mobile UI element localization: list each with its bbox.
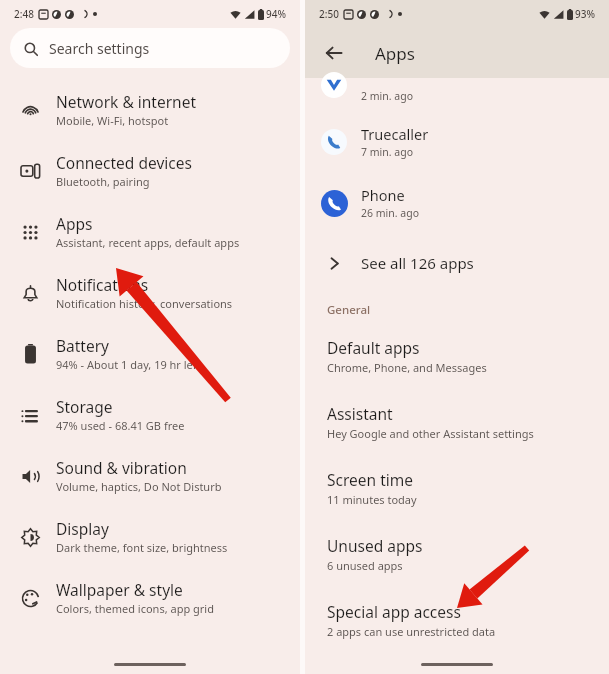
button[interactable]: See all 126 apps	[305, 242, 609, 284]
staticText: 2 min. ago	[361, 89, 413, 103]
button[interactable]: Storage	[0, 387, 300, 442]
staticText: 94% - About 1 day, 19 hr left	[56, 357, 201, 372]
staticText: Bluetooth, pairing	[56, 174, 150, 189]
staticText: Assistant	[327, 403, 393, 424]
button[interactable]: Wallpaper & style	[0, 570, 300, 625]
button[interactable]: Connected devices	[0, 143, 300, 198]
staticText: Battery	[56, 335, 110, 356]
button[interactable]: 2 min. ago	[305, 80, 609, 106]
staticText: Wallpaper & style	[56, 579, 183, 600]
staticText: 2:50	[319, 7, 339, 21]
button[interactable]: Truecaller	[305, 116, 609, 167]
staticText: Network & internet	[56, 91, 196, 112]
button[interactable]: Search settings	[10, 28, 290, 68]
staticText: Volume, haptics, Do Not Disturb	[56, 479, 222, 494]
staticText: 2 apps can use unrestricted data	[327, 624, 496, 639]
staticText: Screen time	[327, 469, 413, 490]
staticText: Phone	[361, 185, 405, 205]
button[interactable]: Phone	[305, 177, 609, 228]
staticText: Apps	[56, 213, 93, 234]
staticText: Sound & vibration	[56, 457, 187, 478]
staticText: 6 unused apps	[327, 558, 403, 573]
button[interactable]: Unused apps	[305, 524, 609, 584]
staticText: Default apps	[327, 337, 420, 358]
button[interactable]: Default apps	[305, 326, 609, 386]
staticText: 2:48	[14, 7, 34, 21]
button[interactable]: Special app access	[305, 590, 609, 650]
staticText: Storage	[56, 396, 113, 417]
staticText: Apps	[375, 42, 415, 65]
staticText: 11 minutes today	[327, 492, 417, 507]
button[interactable]: Assistant	[305, 392, 609, 452]
staticText: Mobile, Wi-Fi, hotspot	[56, 113, 169, 128]
staticText: Notifications	[56, 274, 149, 295]
button[interactable]: Sound & vibration	[0, 448, 300, 503]
staticText: 7 min. ago	[361, 145, 413, 159]
staticText: 47% used - 68.41 GB free	[56, 418, 185, 433]
button[interactable]: Apps	[0, 204, 300, 259]
staticText: Truecaller	[361, 124, 429, 144]
staticText: General	[327, 302, 371, 318]
staticText: Unused apps	[327, 535, 423, 556]
button[interactable]: Back	[317, 36, 351, 70]
staticText: Search settings	[49, 39, 150, 58]
button[interactable]: Screen time	[305, 458, 609, 518]
staticText: 93%	[575, 7, 595, 21]
staticText: 94%	[266, 7, 286, 21]
staticText: Connected devices	[56, 152, 192, 173]
staticText: Dark theme, font size, brightness	[56, 540, 228, 555]
staticText: Notification history, conversations	[56, 296, 233, 311]
staticText: Special app access	[327, 601, 461, 622]
staticText: See all 126 apps	[361, 253, 474, 273]
button[interactable]: Display	[0, 509, 300, 564]
staticText: Display	[56, 518, 109, 539]
staticText: Chrome, Phone, and Messages	[327, 360, 487, 375]
staticText: Assistant, recent apps, default apps	[56, 235, 240, 250]
button[interactable]: Battery	[0, 326, 300, 381]
staticText: Hey Google and other Assistant settings	[327, 426, 534, 441]
button[interactable]: Network & internet	[0, 82, 300, 137]
staticText: Colors, themed icons, app grid	[56, 601, 214, 616]
staticText: 26 min. ago	[361, 206, 420, 220]
button[interactable]: Notifications	[0, 265, 300, 320]
